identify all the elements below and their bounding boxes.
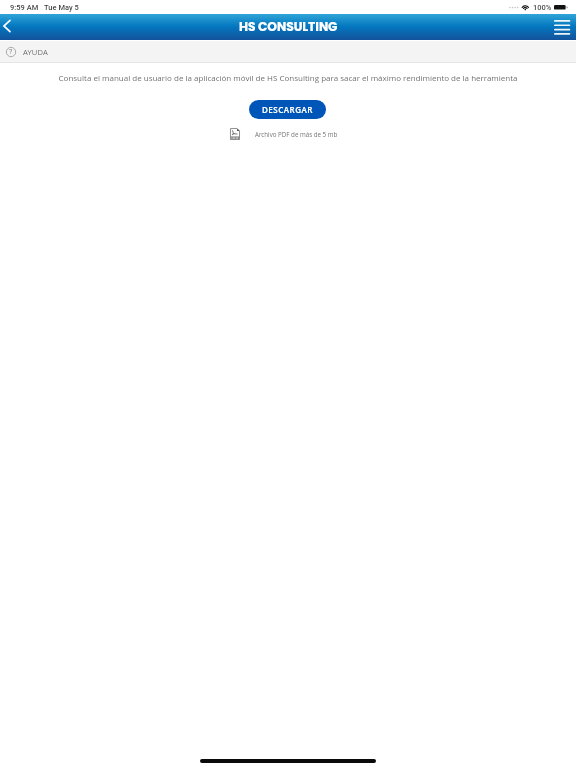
staticText: HS CONSULTING — [239, 18, 338, 35]
button[interactable]: Back — [0, 14, 26, 40]
staticText: ? — [9, 48, 13, 56]
staticText: Archivo PDF de más de 5 mb — [255, 130, 338, 138]
button[interactable]: DESCARGAR — [249, 100, 326, 119]
staticText: 9:59 AM — [10, 3, 39, 12]
button[interactable]: Menu — [550, 14, 576, 40]
staticText: DESCARGAR — [262, 104, 313, 115]
staticText: AYUDA — [23, 47, 48, 57]
staticText: 100% — [533, 3, 552, 12]
staticText: Consulta el manual de usuario de la apli… — [40, 72, 536, 83]
staticText: Tue May 5 — [44, 3, 79, 12]
button[interactable]: ? — [0, 41, 576, 63]
